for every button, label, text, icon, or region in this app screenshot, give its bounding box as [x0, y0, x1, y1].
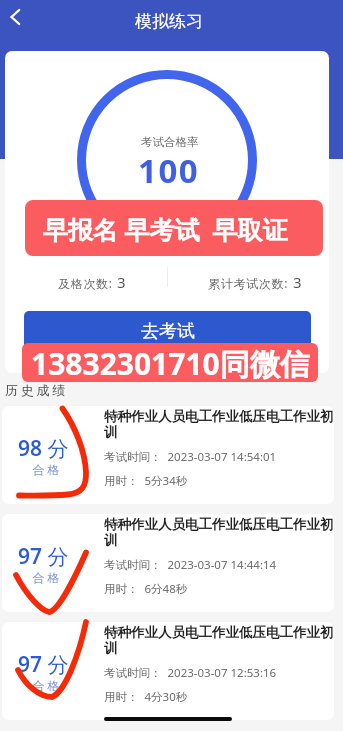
staticText: 早报名 早考试 早取证 — [43, 212, 288, 246]
staticText: 100 — [138, 148, 200, 193]
staticText: 去考试 — [141, 320, 195, 343]
staticText: 合格 — [31, 678, 61, 693]
staticText: 用时： 4分30秒 — [104, 689, 188, 705]
staticText: 合格 — [31, 462, 61, 477]
staticText: 3 — [293, 272, 302, 292]
staticText: 模拟练习 — [135, 11, 203, 32]
staticText: 特种作业人员电工作业低压电工作业初训 — [104, 408, 334, 441]
staticText: 97 分 — [18, 542, 69, 571]
staticText: 合格 — [31, 570, 61, 585]
staticText: 3 — [117, 272, 126, 292]
staticText: 考试时间： 2023-03-07 12:53:16 — [104, 665, 277, 681]
staticText: 历史成绩 — [5, 382, 69, 398]
button[interactable]: Back — [2, 6, 34, 38]
staticText: 考试时间： 2023-03-07 14:44:14 — [104, 557, 277, 573]
button[interactable]: 97 分 — [2, 622, 334, 720]
staticText: 累计考试次数: — [208, 275, 289, 291]
button[interactable]: 去考试 — [24, 311, 311, 351]
staticText: 用时： 5分34秒 — [104, 473, 188, 489]
staticText: 考试时间： 2023-03-07 14:54:01 — [104, 449, 277, 465]
staticText: 特种作业人员电工作业低压电工作业初训 — [104, 624, 334, 657]
staticText: 考试合格率 — [141, 135, 199, 149]
button[interactable]: 98 分 — [2, 406, 334, 504]
staticText: 用时： 6分48秒 — [104, 581, 188, 597]
staticText: 及格次数: — [58, 275, 113, 291]
staticText: 13832301710同微信 — [31, 343, 310, 382]
staticText: 98 分 — [18, 434, 69, 463]
button[interactable]: 97 分 — [2, 514, 334, 612]
staticText: 97 分 — [18, 650, 69, 679]
staticText: 特种作业人员电工作业低压电工作业初训 — [104, 516, 334, 549]
